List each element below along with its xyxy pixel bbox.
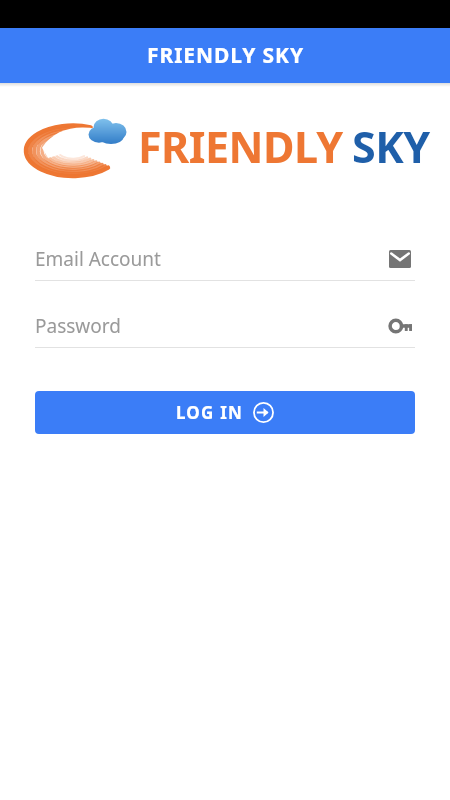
button[interactable]: Password [35, 305, 415, 348]
other: Email [385, 244, 415, 274]
staticText: FRIENDLY [138, 117, 343, 176]
staticText: LOG IN [176, 401, 243, 424]
button[interactable]: FRIENDLY SKY [0, 41, 450, 70]
staticText: Password [35, 313, 385, 339]
other: Password [385, 311, 415, 341]
other: Friendly Sky logo [26, 116, 126, 176]
staticText: FRIENDLY SKY [147, 41, 304, 70]
staticText: SKY [352, 117, 430, 176]
staticText: Email Account [35, 246, 385, 272]
button[interactable]: Email Account [35, 238, 415, 281]
button[interactable]: LOG IN [35, 391, 415, 434]
